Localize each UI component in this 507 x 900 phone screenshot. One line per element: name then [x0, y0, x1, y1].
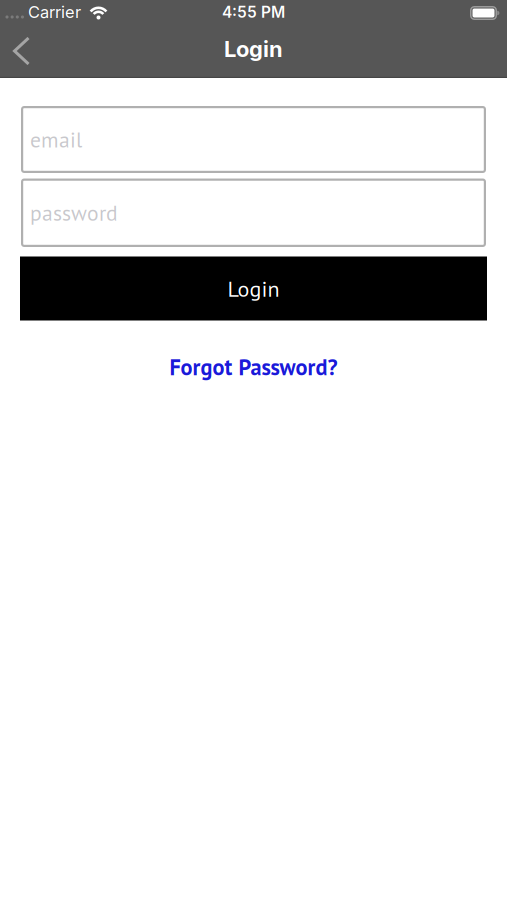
button[interactable]: password [0, 178, 507, 247]
staticText: Login [227, 274, 279, 303]
staticText: Carrier [28, 2, 81, 22]
button[interactable]: Forgot Password? [169, 352, 337, 381]
button[interactable] [0, 35, 30, 67]
button[interactable]: Login [0, 256, 507, 320]
staticText: Login [224, 36, 283, 62]
staticText: password [30, 199, 118, 227]
staticText: email [30, 125, 82, 153]
button[interactable]: email [0, 106, 507, 173]
staticText: 4:55 PM [222, 3, 285, 21]
staticText: Forgot Password? [169, 352, 337, 381]
